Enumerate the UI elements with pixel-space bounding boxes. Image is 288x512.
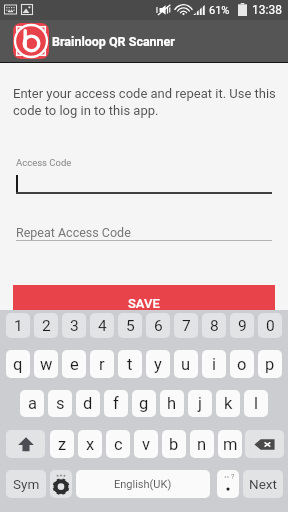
- staticText: z: [58, 435, 67, 454]
- button[interactable]: m: [218, 430, 242, 458]
- button[interactable]: j: [188, 390, 212, 417]
- button[interactable]: h: [160, 390, 184, 417]
- button[interactable]: 1: [6, 313, 30, 338]
- button[interactable]: w: [34, 350, 58, 378]
- staticText: j: [198, 394, 202, 413]
- staticText: 3: [70, 317, 79, 335]
- staticText: m: [223, 435, 238, 454]
- button[interactable]: q: [6, 350, 30, 378]
- button[interactable]: 7: [174, 313, 198, 338]
- button[interactable]: Sym: [6, 470, 46, 498]
- staticText: Sym: [13, 476, 40, 492]
- staticText: y: [154, 355, 162, 374]
- staticText: 61%: [209, 4, 230, 17]
- staticText: n: [197, 435, 207, 454]
- button[interactable]: p: [258, 350, 282, 378]
- button[interactable]: f: [104, 390, 128, 417]
- button[interactable]: Next: [243, 470, 283, 498]
- button[interactable]: 8: [202, 313, 226, 338]
- button[interactable]: z: [50, 430, 74, 458]
- staticText: u: [181, 355, 191, 374]
- staticText: b: [169, 435, 179, 454]
- staticText: SAVE: [128, 296, 160, 311]
- staticText: 6: [154, 317, 163, 335]
- staticText: 7: [182, 317, 191, 335]
- staticText: 9: [238, 317, 247, 335]
- button[interactable]: 6: [146, 313, 170, 338]
- button[interactable]: l: [244, 390, 268, 417]
- button[interactable]: 2: [34, 313, 58, 338]
- button[interactable]: Shift: [6, 430, 45, 458]
- button[interactable]: Keyboard settings: [50, 470, 72, 498]
- staticText: r: [99, 355, 105, 374]
- button[interactable]: i: [202, 350, 226, 378]
- staticText: i: [212, 355, 217, 374]
- button[interactable]: e: [62, 350, 86, 378]
- staticText: p: [265, 355, 275, 374]
- staticText: Enter your access code and repeat it. Us…: [13, 86, 279, 119]
- button[interactable]: 9: [230, 313, 254, 338]
- staticText: d: [83, 394, 93, 413]
- button[interactable]: d: [76, 390, 100, 417]
- staticText: a: [28, 394, 37, 413]
- button[interactable]: b: [162, 430, 186, 458]
- staticText: English(UK): [114, 478, 172, 491]
- button[interactable]: English(UK): [76, 470, 210, 498]
- staticText: k: [224, 394, 233, 413]
- button[interactable]: 3: [62, 313, 86, 338]
- staticText: f: [113, 394, 119, 413]
- staticText: Access Code: [16, 157, 72, 168]
- button[interactable]: o: [230, 350, 254, 378]
- button[interactable]: x: [78, 430, 102, 458]
- staticText: 0: [266, 317, 275, 335]
- staticText: Brainloop QR Scanner: [52, 34, 175, 49]
- staticText: c: [114, 435, 123, 454]
- button[interactable]: c: [106, 430, 130, 458]
- staticText: e: [70, 355, 79, 374]
- staticText: w: [40, 355, 53, 374]
- staticText: Repeat Access Code: [16, 225, 131, 240]
- staticText: l: [254, 394, 259, 413]
- button[interactable]: r: [90, 350, 114, 378]
- button[interactable]: t: [118, 350, 142, 378]
- staticText: 5: [126, 317, 135, 335]
- staticText: o: [237, 355, 247, 374]
- staticText: Next: [249, 476, 277, 492]
- button[interactable]: g: [132, 390, 156, 417]
- staticText: 2: [42, 317, 51, 335]
- button[interactable]: Backspace: [245, 430, 284, 458]
- button[interactable]: 0: [258, 313, 282, 338]
- staticText: q: [13, 355, 23, 374]
- staticText: x: [86, 435, 95, 454]
- button[interactable]: SAVE: [13, 285, 275, 321]
- button[interactable]: n: [190, 430, 214, 458]
- staticText: 13:38: [252, 3, 282, 17]
- staticText: ?: [231, 473, 235, 481]
- button[interactable]: 4: [90, 313, 114, 338]
- button[interactable]: a: [20, 390, 44, 417]
- staticText: s: [56, 394, 65, 413]
- staticText: v: [142, 435, 150, 454]
- staticText: 1: [14, 317, 23, 335]
- button[interactable]: s: [48, 390, 72, 417]
- staticText: 8: [210, 317, 219, 335]
- staticText: t: [127, 355, 133, 374]
- button[interactable]: Period: [217, 470, 239, 498]
- staticText: g: [139, 394, 149, 413]
- button[interactable]: u: [174, 350, 198, 378]
- button[interactable]: y: [146, 350, 170, 378]
- staticText: 4: [98, 317, 107, 335]
- button[interactable]: v: [134, 430, 158, 458]
- button[interactable]: 5: [118, 313, 142, 338]
- staticText: h: [167, 394, 177, 413]
- button[interactable]: k: [216, 390, 240, 417]
